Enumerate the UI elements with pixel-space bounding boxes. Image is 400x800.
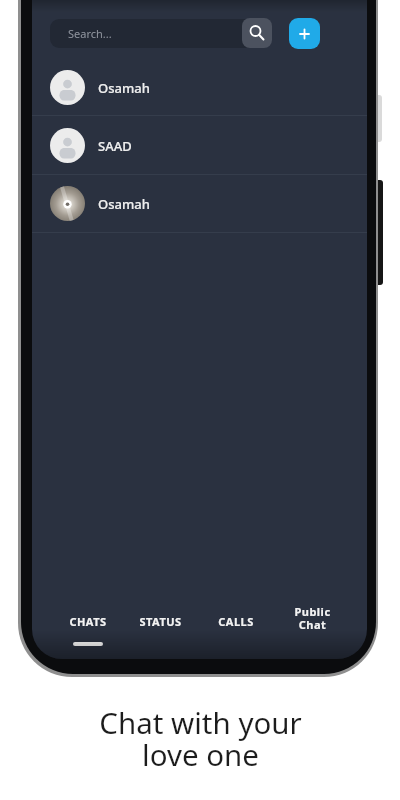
- staticText: Chat with your: [99, 702, 302, 742]
- button[interactable]: CALLS: [196, 608, 276, 634]
- button[interactable]: Osamah: [32, 176, 367, 234]
- staticText: Public Chat: [294, 604, 331, 630]
- staticText: SAAD: [98, 137, 132, 155]
- button[interactable]: Search...: [50, 19, 272, 48]
- button[interactable]: [289, 18, 320, 49]
- staticText: Search...: [68, 26, 112, 41]
- button[interactable]: Osamah: [32, 60, 367, 118]
- staticText: Osamah: [98, 195, 150, 213]
- staticText: STATUS: [139, 614, 182, 629]
- staticText: love one: [142, 734, 259, 774]
- button[interactable]: STATUS: [120, 608, 200, 634]
- button[interactable]: [242, 18, 272, 48]
- button[interactable]: Public Chat: [272, 604, 352, 630]
- button[interactable]: SAAD: [32, 118, 367, 176]
- staticText: Osamah: [98, 79, 150, 97]
- staticText: CALLS: [218, 614, 254, 629]
- staticText: CHATS: [69, 614, 107, 629]
- button[interactable]: CHATS: [48, 608, 128, 634]
